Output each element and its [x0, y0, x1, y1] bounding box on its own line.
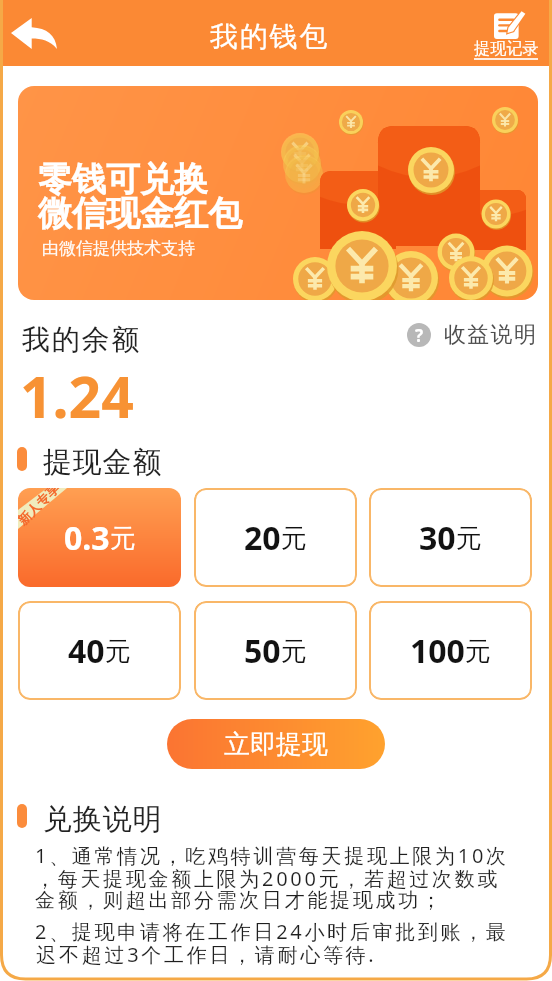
button[interactable]: ?	[407, 321, 538, 349]
staticText: 20	[244, 516, 281, 560]
staticText: 1.24	[20, 357, 134, 435]
staticText: ?	[415, 324, 424, 347]
staticText: 零钱可兑换	[38, 158, 208, 201]
staticText: 0.3	[64, 516, 110, 560]
button[interactable]: Back	[6, 10, 62, 56]
staticText: 我的钱包	[210, 19, 330, 54]
staticText: ，每天提现金额上限为2000元，若超过次数或	[35, 865, 501, 892]
staticText: 迟不超过3个工作日，请耐心等待.	[35, 941, 375, 968]
staticText: 元	[281, 635, 307, 668]
staticText: 由微信提供技术支持	[42, 238, 195, 259]
staticText: 元	[456, 522, 482, 555]
staticText: 元	[110, 522, 136, 555]
staticText: 元	[281, 522, 307, 555]
button[interactable]: 100	[369, 601, 532, 700]
staticText: 兑换说明	[43, 801, 163, 838]
staticText: 金额，则超出部分需次日才能提现成功；	[35, 888, 444, 913]
staticText: 元	[105, 635, 131, 668]
button[interactable]: 40	[18, 601, 181, 700]
staticText: 立即提现	[224, 728, 328, 761]
staticText: 提现记录	[474, 39, 539, 59]
staticText: 收益说明	[444, 321, 538, 349]
button[interactable]: 50	[194, 601, 357, 700]
button[interactable]: 提现记录	[466, 2, 548, 64]
button[interactable]: 20	[194, 488, 357, 587]
staticText: 我的余额	[22, 322, 142, 357]
staticText: 元	[465, 635, 491, 668]
staticText: 50	[244, 629, 281, 673]
button[interactable]: 立即提现	[167, 719, 385, 769]
button[interactable]: 30	[369, 488, 532, 587]
button[interactable]: 0.3	[18, 488, 181, 587]
staticText: 新人专享	[18, 488, 62, 528]
staticText: 提现金额	[43, 444, 163, 481]
staticText: 1、通常情况，吃鸡特训营每天提现上限为10次	[35, 842, 509, 869]
staticText: 30	[419, 516, 456, 560]
staticText: 100	[410, 629, 465, 673]
staticText: 40	[68, 629, 105, 673]
staticText: 2、提现申请将在工作日24小时后审批到账，最	[35, 918, 509, 945]
staticText: 微信现金红包	[38, 192, 242, 235]
